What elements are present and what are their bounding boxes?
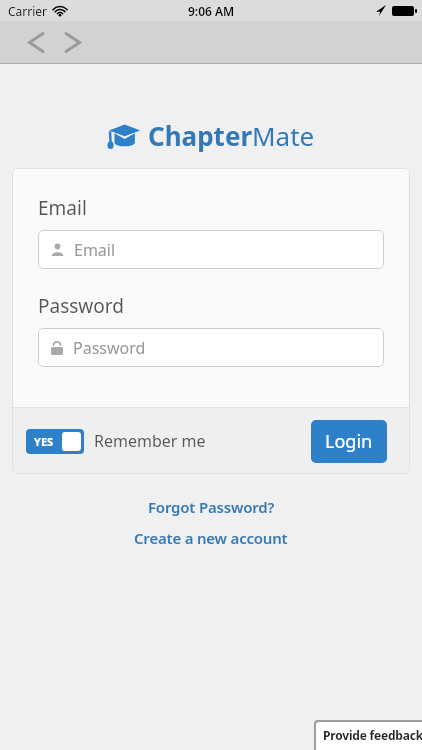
button[interactable]: Email: [51, 230, 384, 269]
staticText: Password: [73, 337, 146, 359]
staticText: YES: [34, 434, 54, 449]
staticText: Remember me: [94, 430, 206, 452]
staticText: ChapterMate: [148, 118, 315, 153]
staticText: Provide feedback: [323, 727, 422, 743]
staticText: 9:06 AM: [188, 3, 235, 19]
button[interactable]: [28, 32, 43, 53]
staticText: Carrier: [8, 3, 48, 19]
staticText: Email: [38, 195, 87, 221]
staticText: Login: [325, 429, 373, 454]
button[interactable]: Provide feedback: [316, 722, 422, 750]
button[interactable]: Create a new account: [134, 528, 288, 548]
button[interactable]: YES: [26, 429, 84, 454]
staticText: Password: [38, 293, 124, 319]
button[interactable]: Password: [51, 328, 384, 367]
button[interactable]: [66, 32, 81, 53]
button[interactable]: Login: [311, 420, 387, 463]
button[interactable]: Forgot Password?: [148, 497, 275, 517]
staticText: Email: [74, 239, 116, 261]
